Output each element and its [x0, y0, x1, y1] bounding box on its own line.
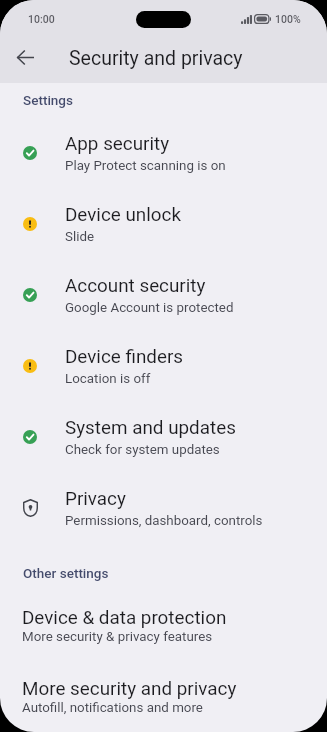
- staticText: App security: [65, 133, 170, 155]
- button[interactable]: Account security: [0, 262, 327, 333]
- staticText: Security and privacy: [69, 47, 243, 70]
- button[interactable]: Device unlock: [0, 191, 327, 262]
- staticText: Other settings: [23, 565, 109, 581]
- staticText: More security & privacy features: [22, 629, 213, 645]
- staticText: Device finders: [65, 346, 184, 368]
- staticText: More security and privacy: [22, 678, 237, 700]
- button[interactable]: App security: [0, 120, 327, 191]
- staticText: Permissions, dashboard, controls: [65, 513, 263, 529]
- staticText: Account security: [65, 275, 206, 297]
- staticText: 100%: [275, 13, 301, 25]
- button[interactable]: Device & data protection: [0, 593, 327, 664]
- staticText: Device unlock: [65, 204, 182, 226]
- button[interactable]: Privacy: [0, 475, 327, 546]
- staticText: Privacy: [65, 488, 126, 510]
- staticText: System and updates: [65, 417, 236, 439]
- button[interactable]: Back: [9, 41, 42, 74]
- button[interactable]: System and updates: [0, 404, 327, 475]
- staticText: Autofill, notifications and more: [22, 700, 203, 716]
- staticText: Check for system updates: [65, 442, 220, 458]
- staticText: Location is off: [65, 371, 151, 387]
- button[interactable]: More security and privacy: [0, 664, 327, 732]
- staticText: Device & data protection: [22, 607, 227, 629]
- staticText: Settings: [23, 92, 73, 108]
- staticText: 10:00: [28, 13, 55, 25]
- button[interactable]: Device finders: [0, 333, 327, 404]
- staticText: Play Protect scanning is on: [65, 158, 226, 174]
- staticText: Slide: [65, 229, 95, 245]
- staticText: Google Account is protected: [65, 300, 234, 316]
